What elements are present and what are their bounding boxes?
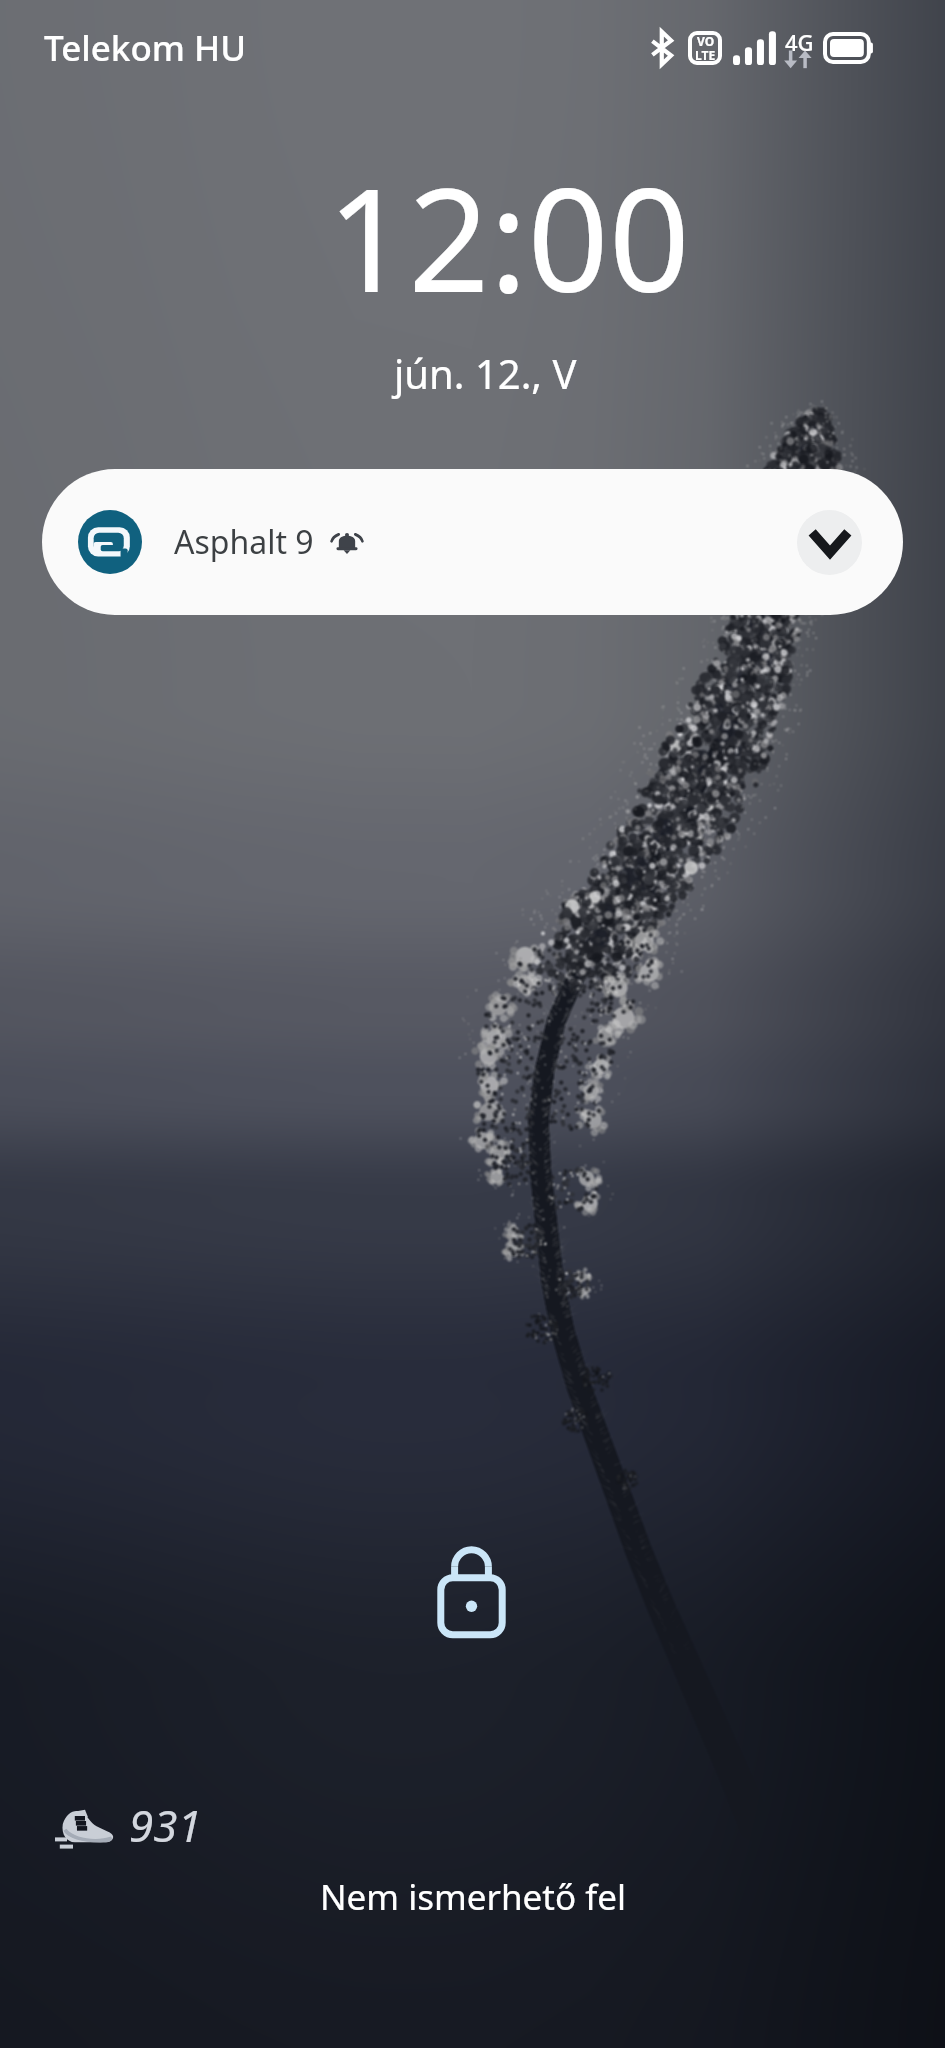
staticText: LTE bbox=[695, 47, 716, 63]
staticText: Asphalt 9 bbox=[174, 520, 314, 564]
staticText: 4G bbox=[785, 27, 814, 57]
button[interactable]: Expand notification bbox=[797, 510, 862, 575]
staticText: VO bbox=[697, 33, 715, 49]
button[interactable]: Locked bbox=[437, 1545, 506, 1640]
staticText: 931 bbox=[129, 1795, 202, 1855]
staticText: 12:00 bbox=[327, 140, 690, 333]
staticText: Nem ismerhető fel bbox=[320, 1873, 626, 1921]
staticText: jún. 12., V bbox=[394, 346, 577, 400]
button[interactable]: Asphalt 9 bbox=[42, 469, 903, 615]
staticText: Telekom HU bbox=[44, 24, 247, 72]
